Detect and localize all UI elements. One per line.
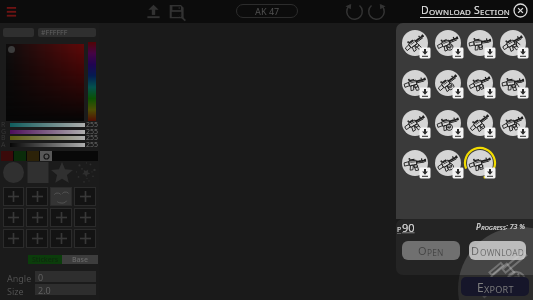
button[interactable]: Add sticker — [50, 229, 72, 248]
button[interactable]: Sticker — [50, 187, 72, 206]
button[interactable]: Download weapon — [401, 69, 434, 102]
button[interactable]: Download weapon — [499, 29, 532, 62]
button[interactable]: Download weapon — [434, 69, 467, 102]
button[interactable]: #FFFFFF — [38, 28, 96, 37]
staticText: S — [474, 3, 480, 17]
staticText: XPORT — [484, 283, 514, 295]
button[interactable]: Download weapon — [434, 149, 467, 182]
button[interactable]: E — [461, 277, 529, 296]
button[interactable]: Download weapon — [466, 29, 499, 62]
staticText: Base — [72, 255, 89, 264]
button[interactable]: Add sticker — [74, 187, 96, 206]
button[interactable]: Download weapon — [434, 109, 467, 142]
staticText: Stickers — [32, 255, 59, 264]
button[interactable]: Download weapon — [499, 109, 532, 142]
button[interactable]: D — [421, 3, 511, 17]
staticText: 0 — [38, 271, 44, 282]
button[interactable]: Stickers — [28, 255, 62, 264]
button[interactable]: Add sticker — [50, 208, 72, 227]
button[interactable]: 0 — [35, 271, 96, 282]
staticText: PEN — [427, 247, 444, 258]
button[interactable]: Download weapon — [466, 109, 499, 142]
staticText: G — [1, 127, 7, 137]
button[interactable]: Close — [513, 3, 528, 18]
button[interactable]: Undo — [344, 1, 365, 22]
button[interactable]: Download weapon — [434, 29, 467, 62]
button[interactable]: D — [469, 241, 526, 260]
button[interactable]: Upload — [145, 3, 162, 20]
button[interactable]: AK 47 — [236, 4, 298, 18]
button[interactable]: Menu — [5, 4, 20, 19]
button[interactable]: Download weapon — [466, 149, 499, 182]
button[interactable]: Download weapon — [401, 149, 434, 182]
staticText: Size — [7, 285, 24, 297]
staticText: 255 — [86, 127, 99, 137]
staticText: : 73 % — [506, 222, 525, 232]
staticText: 255 — [86, 120, 99, 130]
button[interactable]: Download weapon — [401, 29, 434, 62]
button[interactable]: Add sticker — [3, 187, 24, 206]
staticText: 90 — [402, 220, 415, 235]
staticText: E — [477, 279, 484, 295]
staticText: 255 — [86, 133, 99, 143]
button[interactable]: Add sticker — [74, 208, 96, 227]
staticText: B — [1, 133, 6, 143]
button[interactable]: 2.0 — [35, 284, 96, 295]
staticText: ROGRESS — [481, 224, 506, 232]
button[interactable]: Shape — [76, 162, 96, 183]
button[interactable]: Base — [62, 255, 98, 264]
staticText: OWNLOAD — [480, 247, 524, 258]
staticText: 255 — [86, 140, 99, 150]
staticText: ECTION — [480, 6, 511, 17]
button[interactable]: Add sticker — [74, 229, 96, 248]
button[interactable]: Download weapon — [401, 109, 434, 142]
button[interactable]: Redo — [366, 1, 387, 22]
button[interactable]: Add sticker — [26, 229, 48, 248]
staticText: 2.0 — [38, 284, 51, 295]
button[interactable]: Add sticker — [3, 208, 24, 227]
button[interactable]: Save — [168, 3, 185, 20]
staticText: D — [421, 3, 429, 17]
staticText: Angle — [7, 272, 32, 284]
staticText: AK 47 — [255, 5, 280, 17]
staticText: D — [471, 243, 480, 258]
button[interactable]: Add sticker — [3, 229, 24, 248]
button[interactable]: Shape — [52, 162, 72, 183]
button[interactable]: O — [402, 241, 460, 260]
button[interactable]: Shape — [3, 162, 24, 183]
staticText: P — [476, 221, 481, 232]
staticText: O — [418, 243, 427, 258]
staticText: P — [397, 225, 402, 235]
staticText: A — [1, 140, 6, 150]
staticText: OWNLOAD — [429, 6, 471, 17]
staticText: R — [1, 120, 6, 130]
button[interactable]: Add sticker — [26, 208, 48, 227]
button[interactable]: Add sticker — [26, 187, 48, 206]
staticText: #FFFFFF — [41, 28, 68, 37]
button[interactable]: Download weapon — [466, 69, 499, 102]
button[interactable]: Download weapon — [499, 69, 532, 102]
button[interactable]: Pick colour — [40, 151, 52, 161]
